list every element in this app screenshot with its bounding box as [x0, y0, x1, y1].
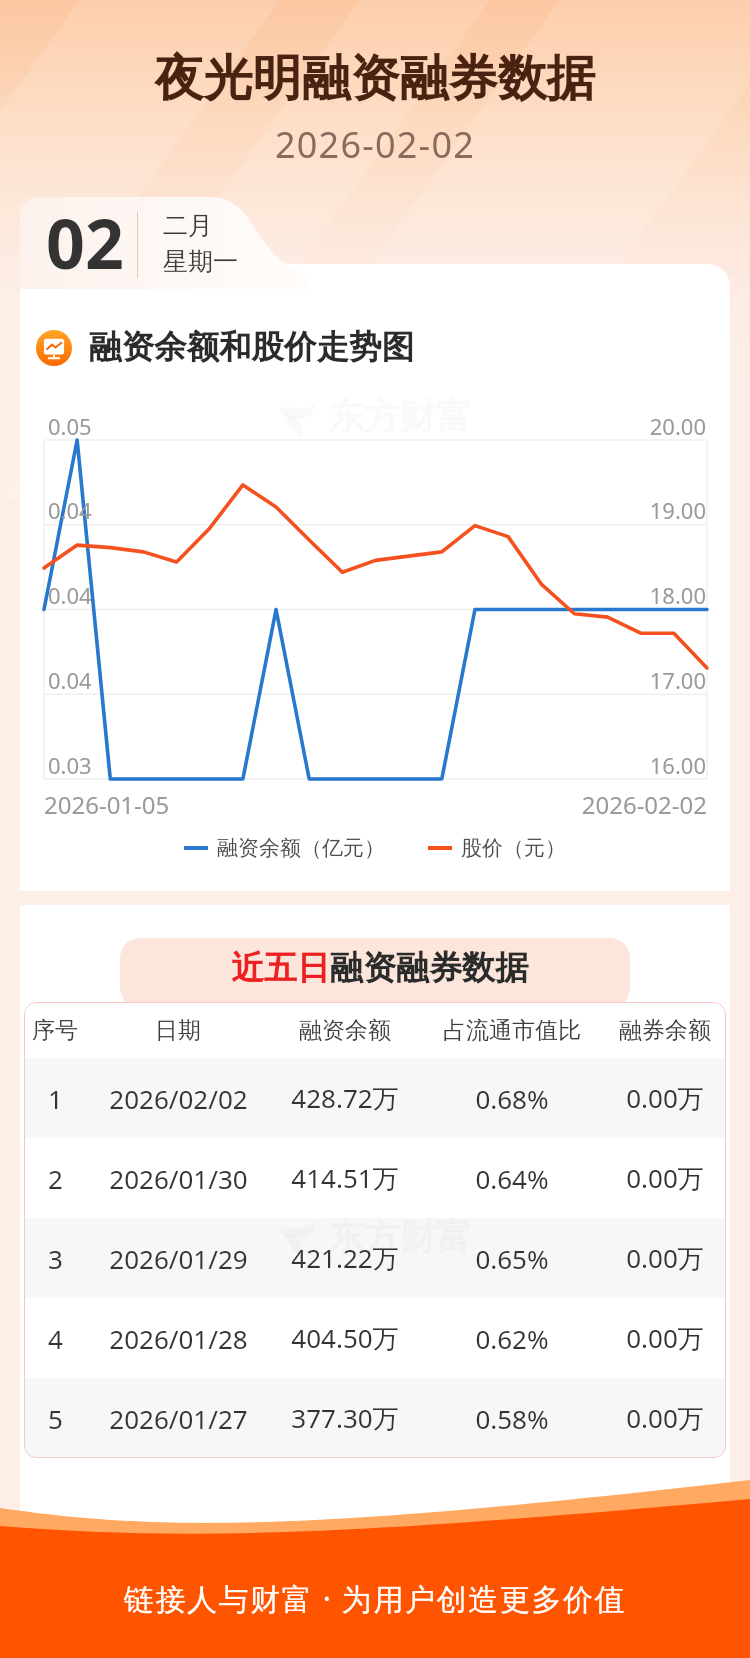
other: 走势图 [36, 330, 72, 366]
staticText: 0.00万 [626, 1400, 704, 1436]
staticText: 东方财富 [328, 1214, 472, 1259]
staticText: 0.65% [475, 1241, 549, 1276]
staticText: 377.30万 [291, 1400, 399, 1436]
staticText: 近五日融资融券数据 [231, 947, 528, 989]
staticText: 占流通市值比 [443, 1016, 581, 1045]
staticText: 2026/01/29 [109, 1241, 248, 1276]
staticText: 1 [48, 1081, 63, 1116]
staticText: 2 [48, 1161, 63, 1196]
staticText: 16.00 [20, 750, 706, 780]
staticText: 序号 [32, 1016, 78, 1045]
staticText: 0.64% [475, 1161, 549, 1196]
staticText: 融资余额 [299, 1016, 391, 1045]
staticText: 2026-02-02 [20, 788, 707, 821]
staticText: 链接人与财富 · 为用户创造更多价值 [0, 1578, 750, 1619]
staticText: 日期 [155, 1016, 201, 1045]
staticText: 3 [48, 1241, 63, 1276]
staticText: 0.03 [48, 750, 92, 780]
staticText: 星期一 [163, 246, 238, 277]
staticText: 0.04 [48, 665, 92, 695]
staticText: 5 [48, 1401, 63, 1436]
staticText: 0.68% [475, 1081, 549, 1116]
staticText: 19.00 [20, 495, 706, 525]
staticText: 4 [48, 1321, 63, 1356]
staticText: 夜光明融资融券数据 [0, 48, 750, 110]
staticText: 0.62% [475, 1321, 549, 1356]
staticText: 2026/01/28 [109, 1321, 248, 1356]
staticText: 0.00万 [626, 1080, 704, 1116]
staticText: 2026-02-02 [0, 120, 750, 169]
staticText: 404.50万 [291, 1320, 399, 1356]
staticText: 02 [46, 196, 124, 288]
staticText: 414.51万 [291, 1160, 399, 1196]
staticText: 股价（元） [461, 835, 566, 861]
staticText: 2026/02/02 [109, 1081, 248, 1116]
staticText: 二月 [163, 210, 213, 241]
staticText: 2026-01-05 [44, 788, 170, 821]
staticText: 2026/01/27 [109, 1401, 248, 1436]
staticText: 17.00 [20, 665, 706, 695]
staticText: 融资余额和股价走势图 [89, 327, 414, 368]
staticText: 0.04 [48, 580, 92, 610]
staticText: 0.00万 [626, 1240, 704, 1276]
staticText: 0.04 [48, 495, 92, 525]
staticText: 0.00万 [626, 1160, 704, 1196]
staticText: 0.58% [475, 1401, 549, 1436]
staticText: 2026/01/30 [109, 1161, 248, 1196]
staticText: 融券余额 [619, 1016, 711, 1045]
staticText: 0.05 [48, 411, 92, 441]
staticText: 421.22万 [291, 1240, 399, 1276]
staticText: 18.00 [20, 580, 706, 610]
staticText: 20.00 [20, 411, 706, 441]
staticText: 融资余额（亿元） [217, 835, 385, 861]
staticText: 0.00万 [626, 1320, 704, 1356]
staticText: 428.72万 [291, 1080, 399, 1116]
